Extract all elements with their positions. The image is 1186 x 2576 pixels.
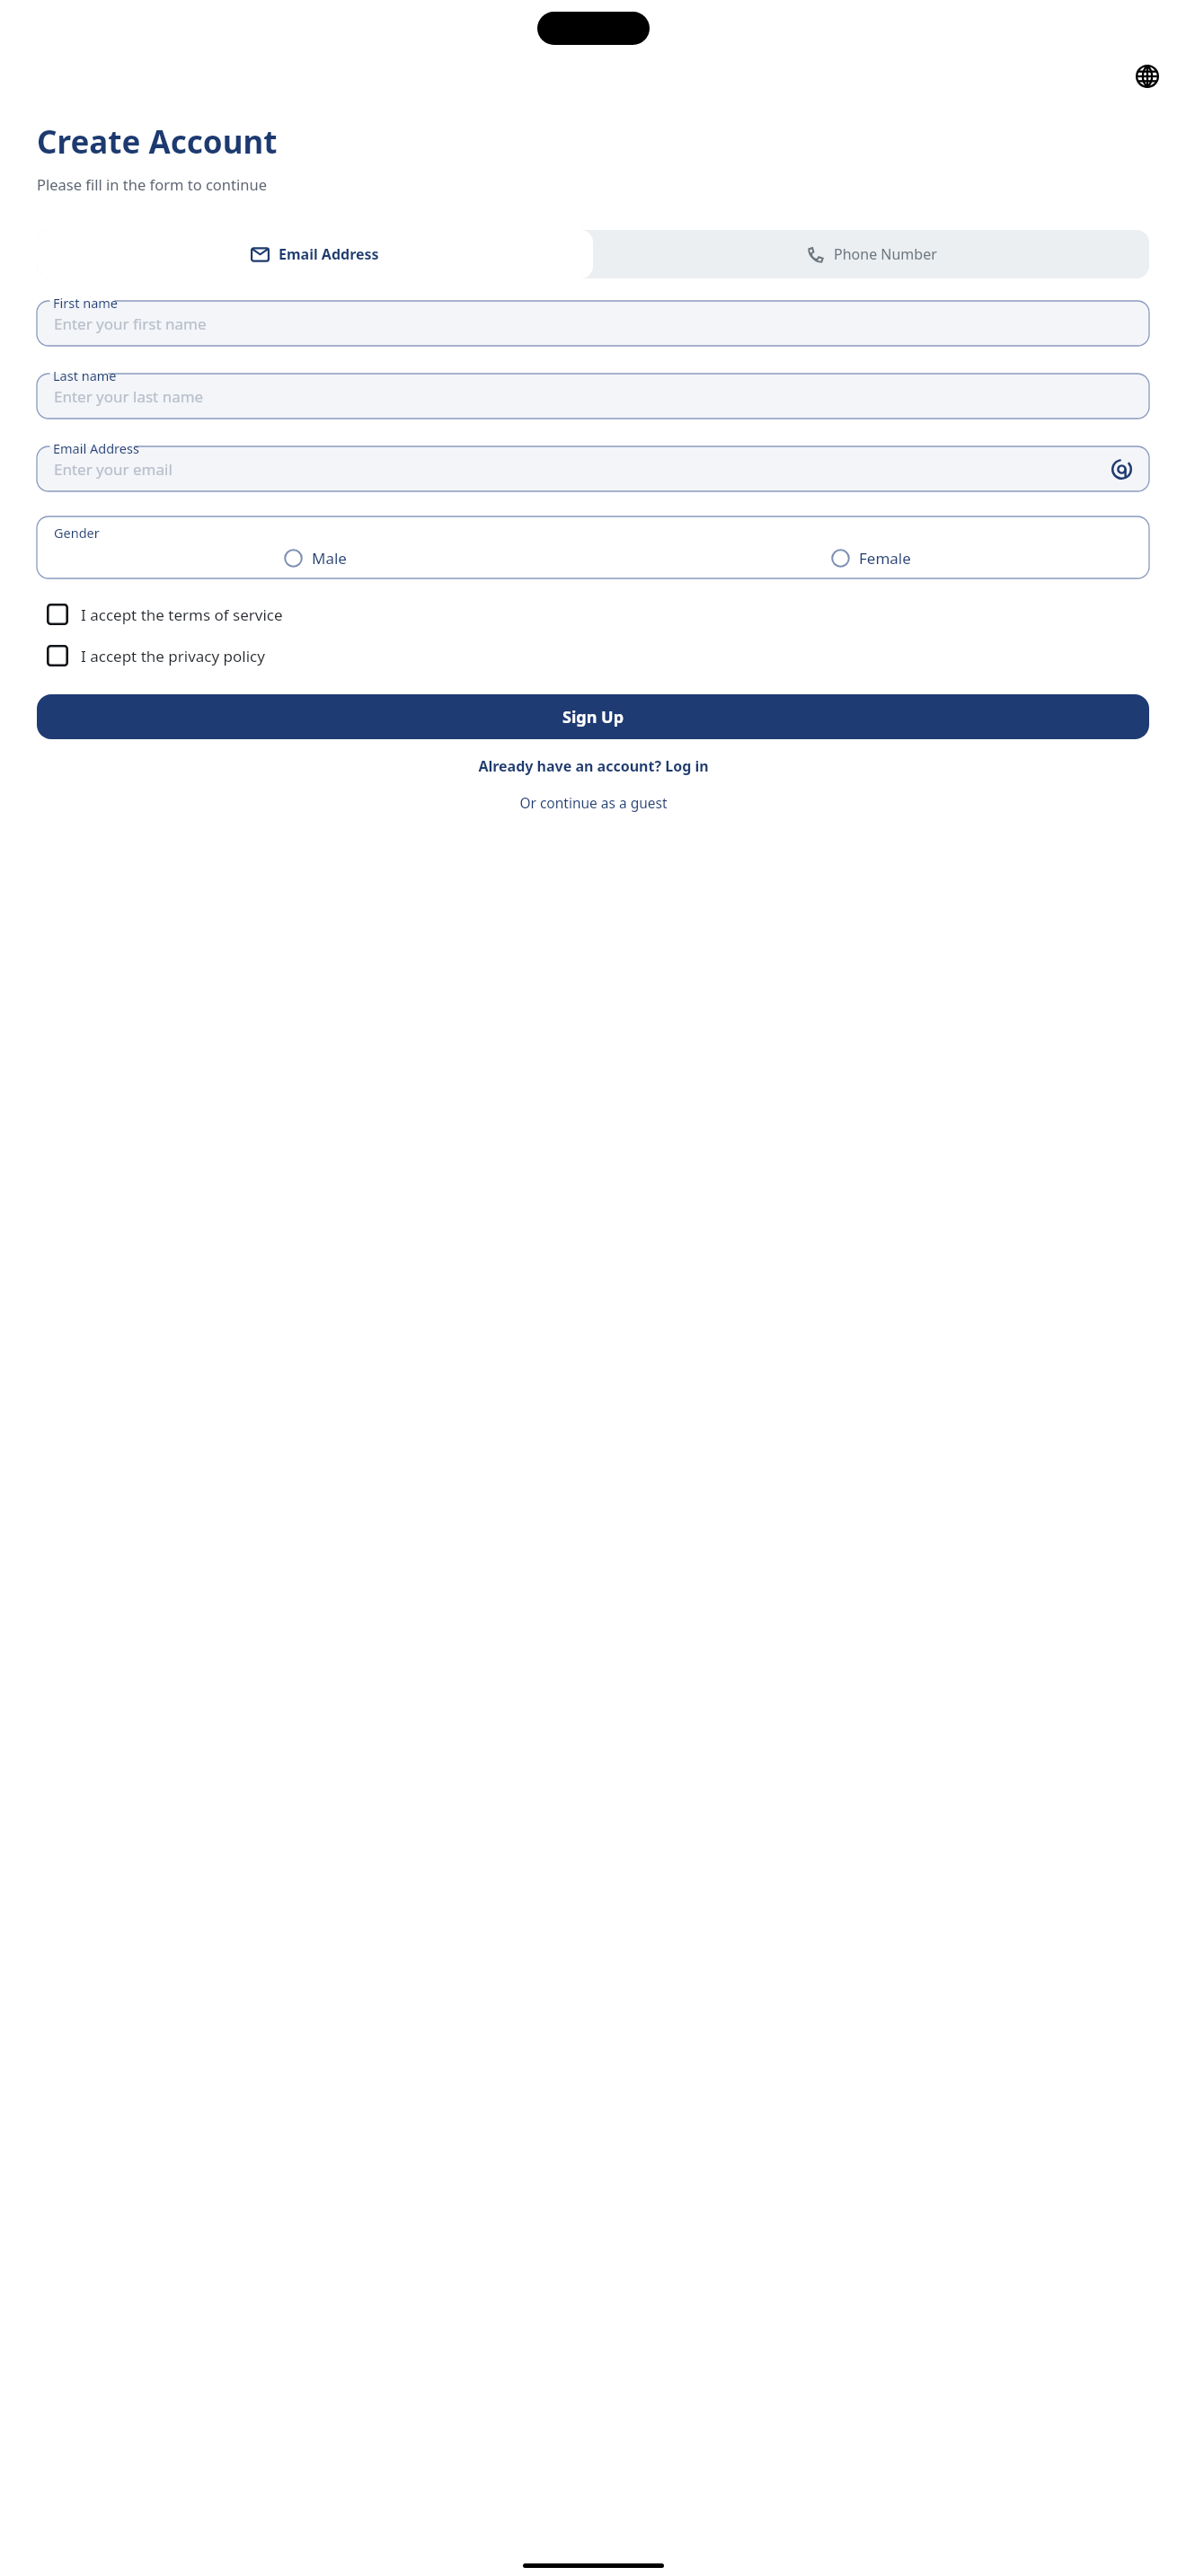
staticText: Create Account xyxy=(37,120,278,163)
button[interactable] xyxy=(37,374,1149,419)
staticText: Please fill in the form to continue xyxy=(37,174,267,194)
button[interactable] xyxy=(37,301,1149,346)
button[interactable]: Female xyxy=(831,548,911,569)
staticText: Male xyxy=(312,548,347,569)
staticText: I accept the privacy policy xyxy=(81,646,265,666)
staticText: Last name xyxy=(53,366,117,384)
button[interactable]: Phone Number xyxy=(593,230,1149,278)
button[interactable] xyxy=(37,446,1149,491)
button[interactable]: I accept the terms of service xyxy=(37,604,283,625)
staticText: Enter your email xyxy=(54,459,173,480)
button[interactable]: Sign Up xyxy=(37,694,1149,739)
staticText: Gender xyxy=(54,524,100,542)
staticText: Email Address xyxy=(279,244,379,264)
staticText: Enter your first name xyxy=(54,313,207,334)
staticText: Female xyxy=(859,548,911,569)
button[interactable]: Or continue as a guest xyxy=(0,793,1186,812)
button[interactable]: I accept the privacy policy xyxy=(37,645,265,666)
staticText: Already have an account? Log in xyxy=(478,756,709,776)
staticText: First name xyxy=(53,294,119,312)
staticText: Sign Up xyxy=(562,706,624,728)
staticText: I accept the terms of service xyxy=(81,604,283,625)
button[interactable]: Change language xyxy=(1127,56,1168,97)
button[interactable]: Email Address xyxy=(37,230,593,278)
staticText: Enter your last name xyxy=(54,386,204,407)
staticText: Phone Number xyxy=(834,244,937,264)
staticText: Email Address xyxy=(53,439,139,457)
button[interactable]: Male xyxy=(284,548,347,569)
button[interactable]: Already have an account? Log in xyxy=(0,756,1186,776)
staticText: Or continue as a guest xyxy=(519,793,668,812)
